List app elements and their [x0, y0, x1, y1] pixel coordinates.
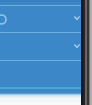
button[interactable]: Expand section	[0, 33, 81, 60]
button[interactable]: Expand section	[0, 6, 81, 32]
